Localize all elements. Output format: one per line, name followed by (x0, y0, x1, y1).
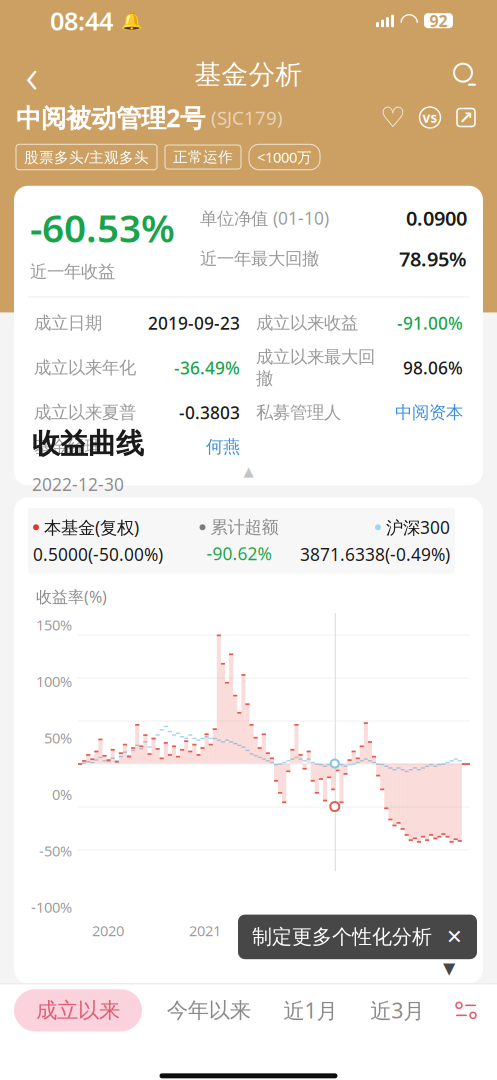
staticText: ▲ (243, 464, 253, 479)
button[interactable]: Search (441, 51, 489, 99)
staticText: 沪深300 (386, 516, 450, 539)
staticText: 3871.6338(-0.49%) (300, 543, 450, 566)
staticText: 近1月 (283, 996, 337, 1024)
staticText: 成立以来 (36, 997, 120, 1023)
staticText: 私募管理人 (256, 402, 341, 423)
staticText: 2021 (189, 921, 221, 940)
staticText: 50% (44, 728, 72, 747)
button[interactable]: 近1月 (275, 986, 345, 1034)
staticText: 92 (429, 10, 447, 31)
staticText: -91.00% (397, 311, 463, 334)
staticText: 成立以来夏普 (34, 402, 136, 423)
staticText: -60.53% (30, 202, 175, 253)
staticText: 150% (36, 615, 72, 634)
staticText: ▼ (443, 959, 455, 977)
staticText: -50% (39, 841, 72, 860)
staticText: ‹ (25, 43, 38, 106)
staticText: 近一年收益 (30, 261, 115, 282)
button[interactable]: Favorite (377, 103, 409, 131)
staticText: 中阅被动管理2号 (16, 101, 205, 134)
staticText: -36.49% (174, 356, 240, 379)
staticText: 何燕 (206, 436, 240, 457)
staticText: 78.95% (399, 245, 467, 272)
staticText: ◠ (400, 8, 417, 33)
staticText: 🔔 (121, 11, 143, 31)
staticText: 0% (52, 784, 72, 804)
staticText: 2022-12-30 (32, 473, 124, 496)
staticText: 收益率(%) (36, 586, 107, 607)
staticText: 0.5000(-50.00%) (33, 543, 163, 566)
button[interactable]: Compare (415, 103, 445, 131)
staticText: 98.06% (403, 356, 463, 379)
staticText: 近一年最大回撤 (200, 248, 319, 269)
staticText: 08:44 (50, 4, 113, 37)
staticText: 成立以来最大回撤 (256, 346, 375, 389)
button[interactable]: 近3月 (362, 986, 432, 1034)
staticText: -100% (31, 897, 72, 917)
staticText: 100% (36, 671, 72, 691)
staticText: ↗ (458, 108, 473, 127)
staticText: <1000万 (257, 147, 312, 167)
staticText: ♡ (380, 102, 405, 133)
staticText: -90.62% (206, 542, 271, 565)
staticText: 今年以来 (167, 997, 251, 1023)
staticText: 基金分析 (194, 58, 302, 91)
staticText: ✕ (446, 925, 463, 948)
staticText: 成立以来年化 (34, 357, 136, 378)
staticText: 制定更多个性化分析 (252, 925, 432, 949)
staticText: 成立以来收益 (256, 312, 358, 334)
button[interactable]: 今年以来 (159, 987, 259, 1033)
button[interactable]: Collapse details (14, 457, 483, 485)
staticText: 收益曲线 (32, 426, 144, 461)
staticText: 单位净值 (01-10) (200, 207, 329, 230)
staticText: vs (422, 109, 437, 126)
staticText: 中阅资本 (395, 402, 463, 423)
staticText: 累计超额 (210, 517, 278, 538)
button[interactable]: Share (451, 103, 481, 131)
button[interactable]: Filter (449, 993, 483, 1027)
staticText: 2019-09-23 (148, 311, 240, 334)
staticText: 正常运作 (173, 148, 233, 166)
staticText: 近3月 (370, 996, 424, 1024)
button[interactable]: 成立以来 (14, 989, 142, 1031)
staticText: -0.3803 (179, 401, 240, 424)
staticText: 成立日期 (34, 312, 102, 334)
staticText: 本基金(复权) (44, 516, 139, 539)
staticText: 0.0900 (406, 205, 467, 231)
staticText: 2020 (92, 921, 124, 940)
button[interactable]: Back (8, 51, 56, 99)
staticText: 股票多头/主观多头 (24, 147, 149, 167)
staticText: 2022 (286, 921, 318, 940)
staticText: (SJC179) (211, 105, 283, 130)
button[interactable]: Dismiss tip (238, 915, 477, 959)
staticText: 基金经理 (34, 436, 102, 457)
